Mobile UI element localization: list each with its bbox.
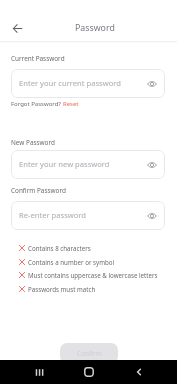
button[interactable]: Show password (145, 77, 159, 91)
staticText: New Password (11, 138, 55, 147)
button[interactable]: Home (81, 364, 97, 380)
button[interactable]: Back (5, 16, 29, 40)
staticText: Contains a number or symbol (28, 258, 115, 266)
staticText: Enter your current password (19, 78, 121, 88)
staticText: Re-enter password (19, 210, 86, 220)
button[interactable]: Contains a number or symbol (19, 255, 115, 268)
staticText: Forgot Password? (11, 100, 61, 108)
staticText: Confirm (77, 349, 102, 358)
button[interactable]: Passwords must match (19, 282, 96, 295)
button[interactable]: Enter your current password (11, 69, 165, 98)
button[interactable]: Confirm (60, 343, 118, 363)
button[interactable]: Show password (145, 209, 159, 223)
staticText: Confirm Password (11, 186, 66, 195)
button[interactable]: Back (131, 364, 147, 380)
button[interactable]: Recent apps (31, 364, 47, 380)
staticText: Current Password (11, 54, 65, 63)
button[interactable]: Enter your new password (11, 150, 165, 179)
button[interactable]: Reset (63, 100, 79, 108)
staticText: Passwords must match (28, 285, 96, 293)
button[interactable]: Contains 8 characters (19, 241, 91, 254)
button[interactable]: Re-enter password (11, 201, 165, 230)
staticText: Password (75, 22, 115, 34)
button[interactable]: Show password (145, 158, 159, 172)
staticText: Must contains uppercase & lowercase lett… (28, 271, 158, 279)
staticText: Enter your new password (19, 159, 110, 169)
button[interactable]: Must contains uppercase & lowercase lett… (19, 268, 158, 281)
staticText: Contains 8 characters (28, 244, 91, 252)
